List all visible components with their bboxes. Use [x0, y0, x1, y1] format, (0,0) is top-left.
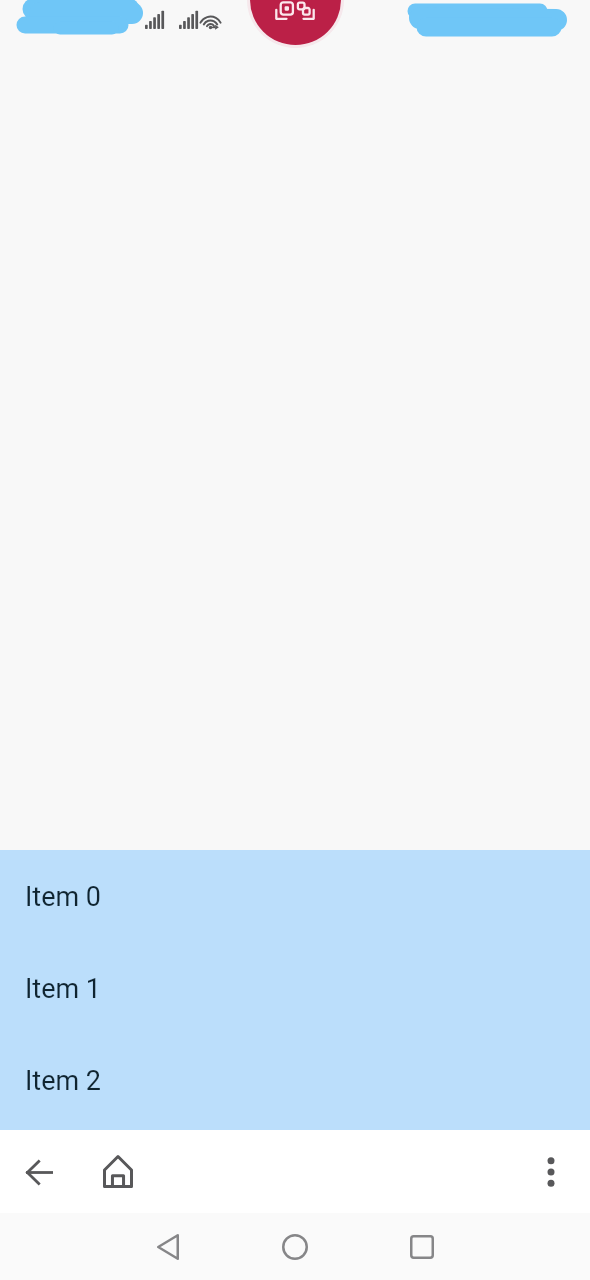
button[interactable]: Back [140, 1213, 196, 1280]
button[interactable]: Item 2 [0, 1035, 590, 1127]
button[interactable]: Back [11, 1144, 67, 1200]
button[interactable]: Scan code [250, 0, 341, 45]
button[interactable]: Home [267, 1213, 323, 1280]
staticText: Item 0 [25, 881, 102, 913]
button[interactable]: Recent apps [394, 1213, 450, 1280]
staticText: Item 2 [25, 1065, 102, 1097]
button[interactable]: More options [523, 1144, 579, 1200]
button[interactable]: Home [90, 1143, 146, 1199]
button[interactable]: Item 0 [0, 851, 590, 943]
staticText: Item 1 [25, 973, 102, 1005]
button[interactable]: Item 1 [0, 943, 590, 1035]
